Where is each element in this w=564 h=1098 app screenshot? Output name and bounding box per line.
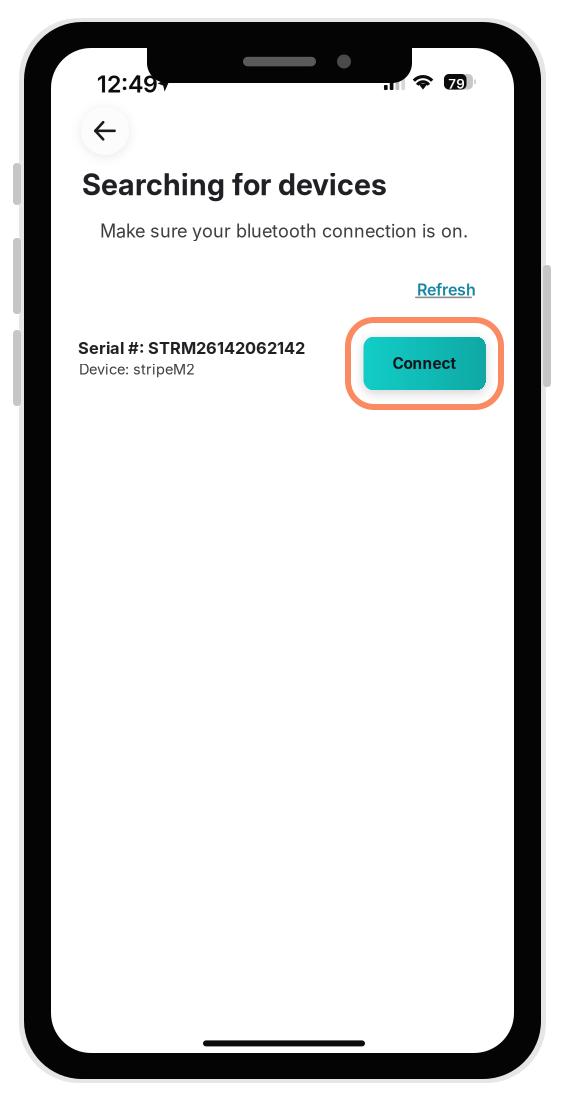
staticText: Searching for devices <box>82 167 387 202</box>
button[interactable]: Connect <box>363 337 485 390</box>
staticText: Connect <box>392 354 456 373</box>
button[interactable]: Refresh <box>416 280 486 302</box>
staticText: Serial #: STRM26142062142 <box>78 338 305 358</box>
button[interactable]: Back <box>80 106 130 156</box>
staticText: Refresh <box>417 280 476 299</box>
staticText: Device: stripeM2 <box>79 360 195 378</box>
staticText: 79 <box>448 76 465 92</box>
staticText: Make sure your bluetooth connection is o… <box>100 220 468 242</box>
staticText: 12:49 <box>97 70 158 98</box>
